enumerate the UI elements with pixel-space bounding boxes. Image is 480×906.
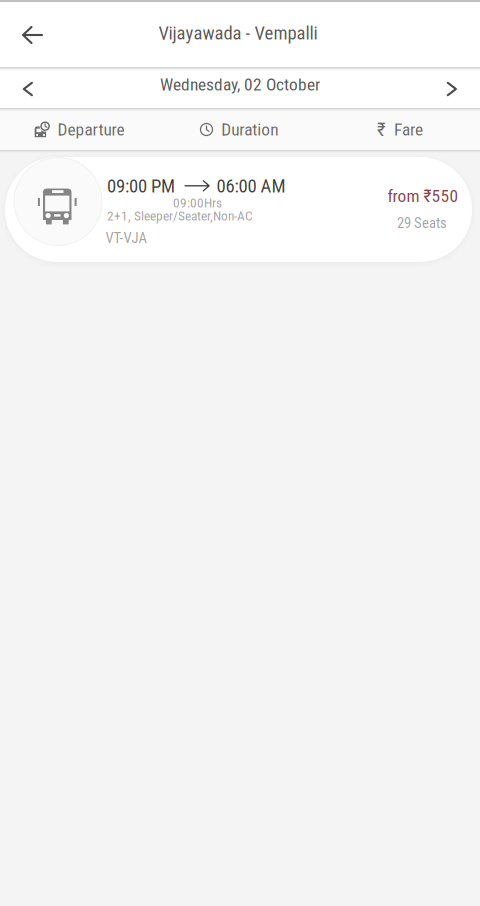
button[interactable]: Sort by Fare	[320, 109, 480, 150]
staticText: 2+1, Sleeper/Seater,Non-AC	[107, 208, 253, 224]
staticText: Departure	[57, 119, 124, 140]
staticText: 06:00 AM	[216, 175, 285, 197]
button[interactable]: Next day	[427, 69, 477, 109]
staticText: 09:00Hrs	[173, 195, 222, 211]
staticText: Wednesday, 02 October	[160, 74, 320, 95]
button[interactable]: Previous day	[3, 69, 53, 109]
staticText: from ₹550	[387, 186, 458, 206]
staticText: Vijayawada - Vempalli	[158, 22, 317, 44]
staticText: 29 Seats	[397, 214, 447, 232]
button[interactable]: 09:00 PM	[5, 157, 472, 262]
button[interactable]: Sort by Duration	[159, 109, 319, 150]
staticText: Fare	[394, 119, 423, 140]
staticText: 09:00 PM	[107, 175, 175, 197]
staticText: Duration	[221, 119, 278, 140]
button[interactable]: Back	[5, 2, 59, 68]
button[interactable]: Sort by Departure	[0, 109, 159, 150]
staticText: ₹	[377, 119, 386, 140]
staticText: VT-VJA	[105, 229, 146, 247]
